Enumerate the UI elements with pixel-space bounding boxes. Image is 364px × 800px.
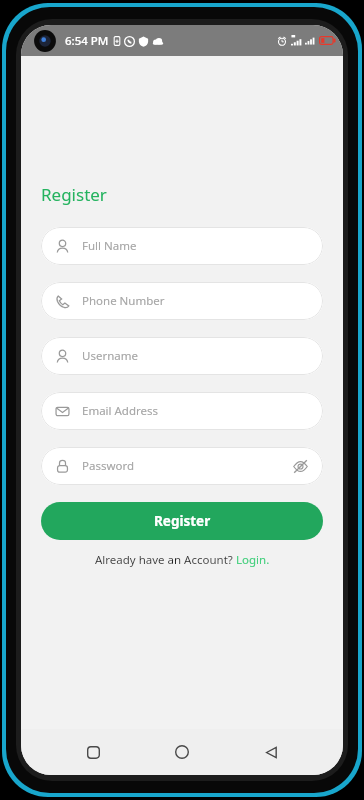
button[interactable]: Home [165,735,199,769]
staticText: Login. [236,552,270,568]
button[interactable]: Phone Number [41,282,323,320]
button[interactable]: Password [41,447,323,485]
staticText: Full Name [82,238,137,254]
button[interactable]: Recent apps [76,735,110,769]
staticText: Username [82,348,138,364]
button[interactable]: Register [41,502,323,540]
button[interactable]: Full Name [41,227,323,265]
button[interactable]: Back [254,735,288,769]
staticText: Register [41,183,107,206]
staticText: Password [82,458,135,474]
button[interactable]: Email Address [41,392,323,430]
staticText: Phone Number [82,293,165,309]
button[interactable]: Username [41,337,323,375]
staticText: 6:54 PM [65,33,109,49]
staticText: Already have an Account? [95,552,236,568]
button[interactable]: Show password [291,457,309,475]
staticText: Email Address [82,403,159,419]
button[interactable]: Login. [236,552,270,568]
staticText: Register [154,512,211,530]
